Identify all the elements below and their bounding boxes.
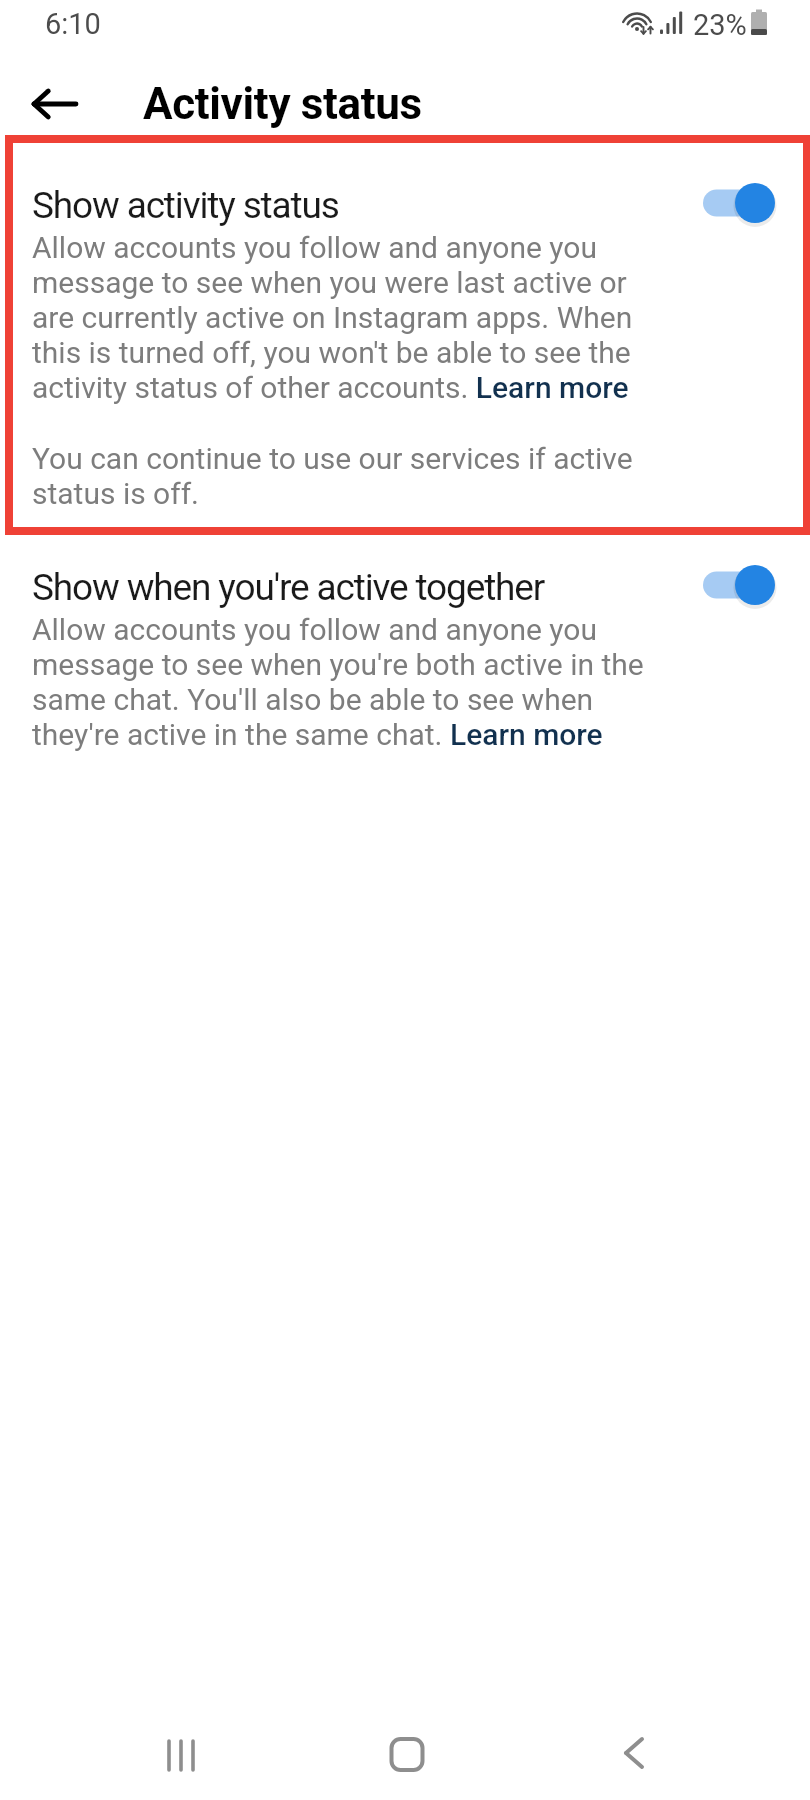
staticText: Activity status xyxy=(143,78,422,130)
button[interactable]: Home xyxy=(362,1718,452,1790)
staticText: Show activity status xyxy=(32,184,339,227)
button[interactable]: Back xyxy=(10,67,100,141)
button[interactable]: Show when you're active together xyxy=(0,566,810,752)
button[interactable]: Recent apps xyxy=(136,1719,226,1791)
button[interactable]: Toggle xyxy=(699,179,795,227)
button[interactable]: Show activity status xyxy=(0,184,810,511)
staticText: You can continue to use our services if … xyxy=(32,441,648,511)
button[interactable]: Back xyxy=(589,1718,679,1790)
staticText: Allow accounts you follow and anyone you… xyxy=(32,230,648,405)
staticText: Show when you're active together xyxy=(32,566,545,609)
staticText: 23% xyxy=(693,8,747,42)
button[interactable]: Toggle xyxy=(699,561,795,609)
staticText: Allow accounts you follow and anyone you… xyxy=(32,612,648,752)
staticText: 6:10 xyxy=(45,7,101,41)
